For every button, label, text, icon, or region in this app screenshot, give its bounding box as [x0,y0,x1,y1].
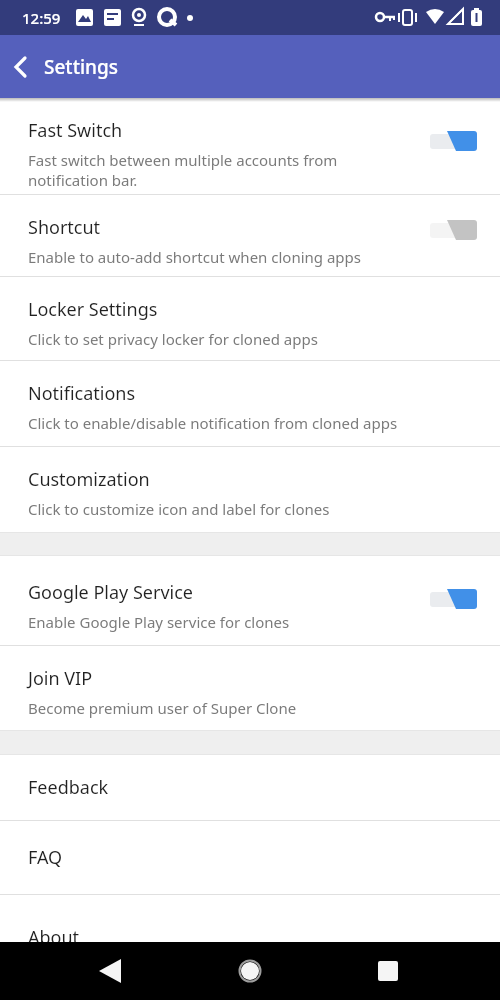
button[interactable]: Notifications [0,361,500,446]
button[interactable]: About [0,895,500,942]
button[interactable]: Fast Switch [0,98,500,194]
staticText: Become premium user of Super Clone [28,698,297,718]
button[interactable]: FAQ [0,821,500,894]
button[interactable]: Google Play Service [0,556,500,645]
button[interactable] [430,130,478,152]
staticText: Locker Settings [28,297,158,322]
staticText: Join VIP [28,666,93,691]
staticText: Fast switch between multiple accounts fr… [28,150,338,170]
staticText: 12:59 [22,8,61,28]
button[interactable]: Customization [0,447,500,532]
staticText: Feedback [28,775,109,800]
button[interactable]: Join VIP [0,646,500,730]
staticText: Click to customize icon and label for cl… [28,499,330,519]
button[interactable] [0,35,44,98]
staticText: About [28,925,80,942]
button[interactable] [430,219,478,241]
staticText: FAQ [28,845,63,870]
staticText: Click to set privacy locker for cloned a… [28,329,318,349]
button[interactable]: Feedback [0,755,500,820]
staticText: Google Play Service [28,580,193,605]
button[interactable]: Shortcut [0,195,500,276]
staticText: notification bar. [28,170,138,190]
staticText: Settings [44,54,118,80]
staticText: Click to enable/disable notification fro… [28,413,398,433]
staticText: Fast Switch [28,118,123,143]
button[interactable]: Locker Settings [0,277,500,360]
staticText: Enable Google Play service for clones [28,612,290,632]
button[interactable] [430,588,478,610]
staticText: Customization [28,467,150,492]
staticText: Notifications [28,381,136,406]
staticText: Shortcut [28,215,101,240]
staticText: Enable to auto-add shortcut when cloning… [28,247,361,267]
